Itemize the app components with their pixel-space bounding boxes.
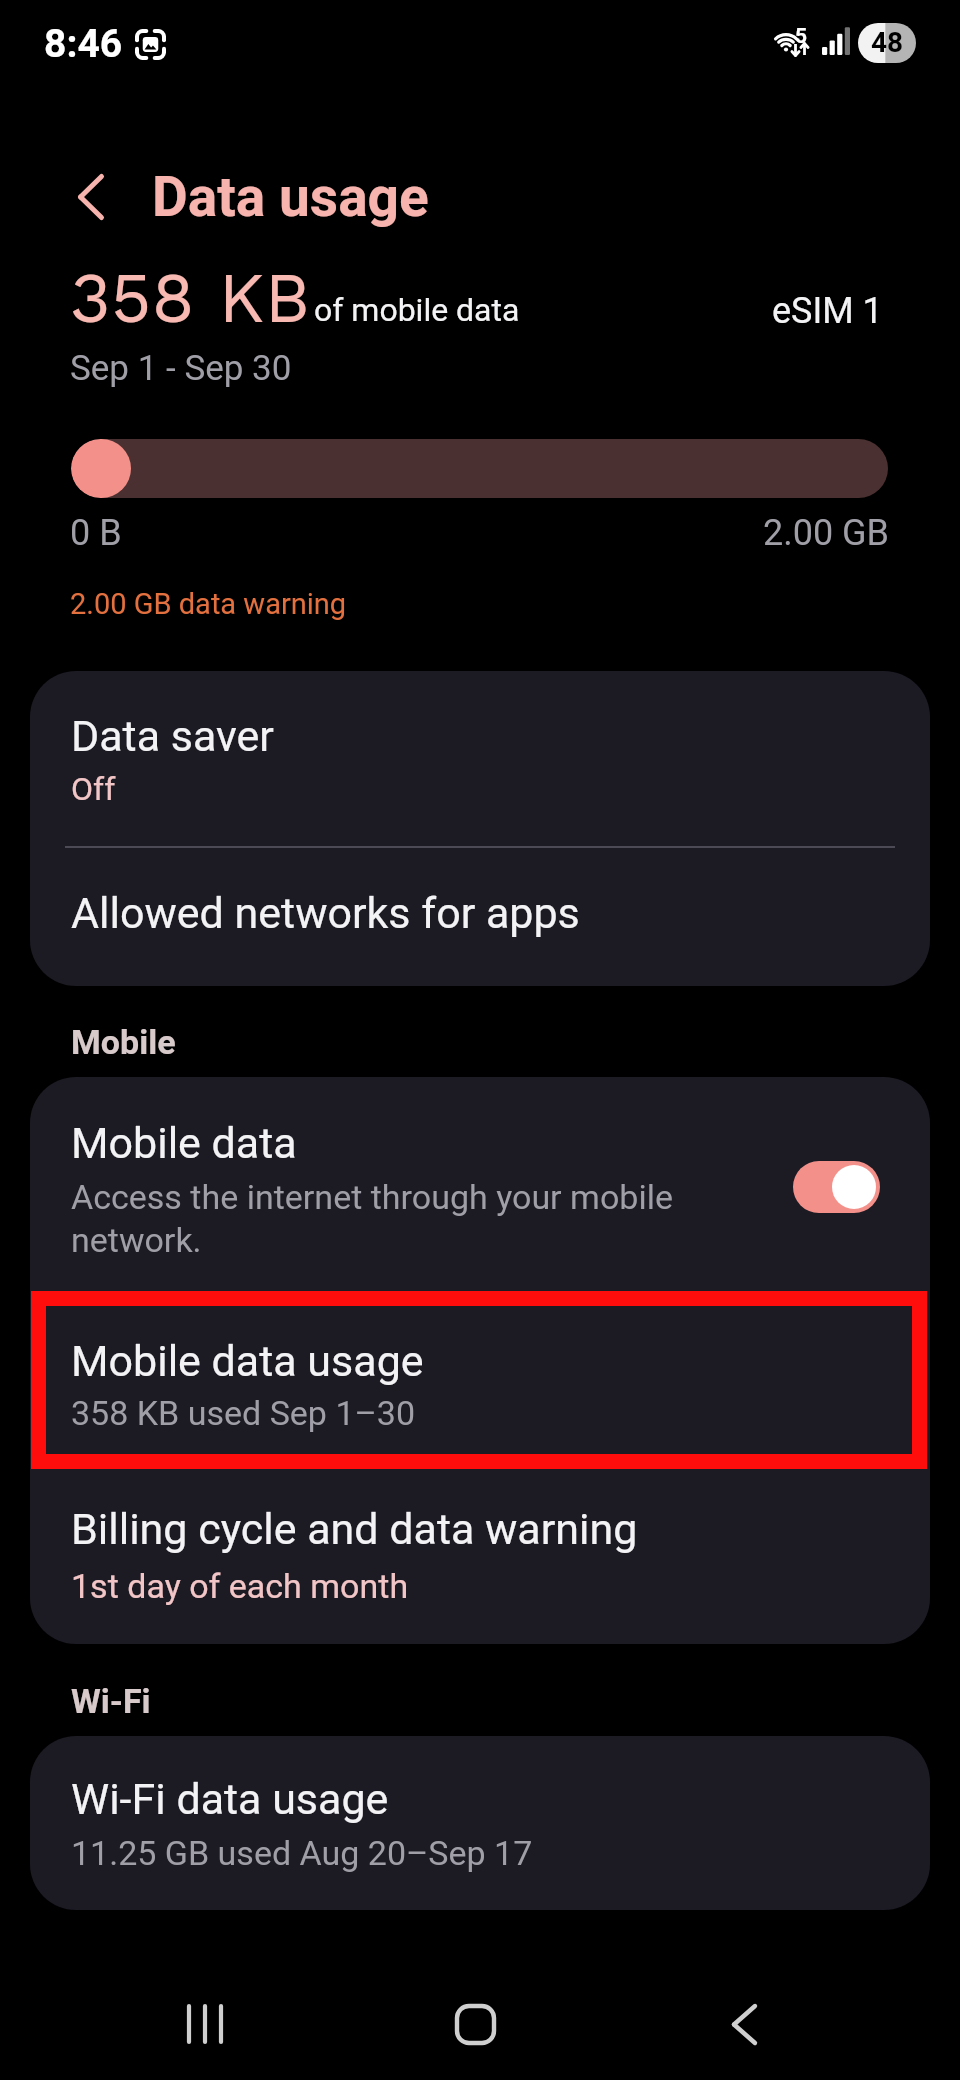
button[interactable]: Mobile data on — [793, 1161, 880, 1213]
staticText: 8:46 — [44, 21, 123, 67]
staticText: Mobile data — [71, 1118, 297, 1168]
button[interactable]: Recent apps — [148, 1968, 264, 2080]
staticText: 48 — [871, 26, 904, 59]
staticText: Access the internet through your mobile … — [71, 1177, 681, 1260]
staticText: 11.25 GB used Aug 20–Sep 17 — [71, 1833, 533, 1873]
staticText: 358 KB used Sep 1–30 — [71, 1393, 416, 1433]
staticText: Wi-Fi data usage — [71, 1774, 389, 1824]
staticText: Mobile data usage — [71, 1336, 424, 1386]
button[interactable]: Back — [58, 166, 124, 228]
staticText: 358 KB — [70, 257, 311, 339]
staticText: Data saver — [71, 711, 274, 761]
staticText: Wi-Fi — [71, 1681, 151, 1721]
button[interactable]: Billing cycle and data warning — [30, 1468, 930, 1644]
button[interactable]: Mobile data — [30, 1077, 930, 1292]
staticText: 1st day of each month — [71, 1566, 409, 1606]
staticText: 0 B — [70, 512, 122, 554]
button[interactable]: Mobile data usage — [30, 1292, 930, 1468]
staticText: Billing cycle and data warning — [71, 1504, 638, 1554]
staticText: Sep 1 - Sep 30 — [70, 348, 292, 389]
staticText: Off — [71, 770, 116, 808]
button[interactable]: Data saver — [30, 671, 930, 846]
staticText: Mobile — [71, 1022, 176, 1062]
staticText: Data usage — [152, 165, 429, 229]
button[interactable]: Home — [417, 1968, 533, 2080]
button[interactable]: Allowed networks for apps — [30, 846, 930, 986]
button[interactable]: Wi-Fi data usage — [30, 1736, 930, 1910]
staticText: 2.00 GB data warning — [70, 587, 347, 621]
staticText: 5 — [795, 24, 808, 49]
staticText: 2.00 GB — [0, 512, 889, 554]
staticText: of mobile data — [314, 291, 520, 329]
staticText: Allowed networks for apps — [71, 888, 580, 938]
staticText: eSIM 1 — [772, 290, 883, 332]
button[interactable]: Back — [686, 1968, 802, 2080]
